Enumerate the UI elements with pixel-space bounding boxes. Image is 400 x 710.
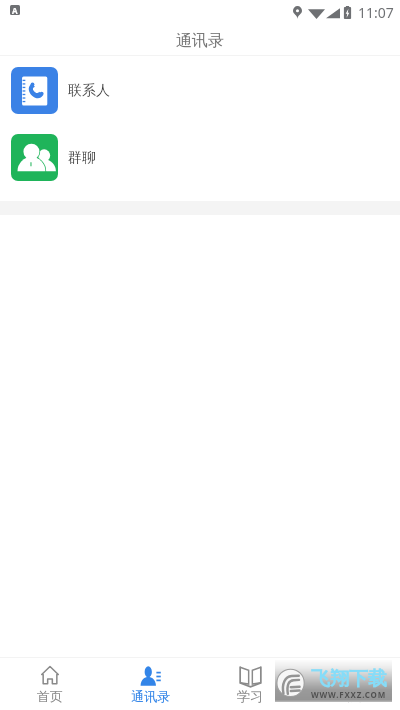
staticText: 群聊	[68, 149, 96, 167]
button[interactable]: 通讯录	[100, 658, 200, 710]
button[interactable]: 我的	[300, 658, 400, 710]
staticText: WWW.FXXZ.COM	[311, 689, 387, 700]
staticText: 联系人	[68, 82, 110, 100]
staticText: A	[12, 5, 18, 15]
button[interactable]: 联系人	[0, 57, 400, 124]
staticText: 首页	[37, 688, 63, 704]
staticText: 学习	[237, 688, 263, 704]
staticText: 飞翔下载	[311, 667, 387, 691]
staticText: 11:07	[358, 3, 394, 22]
staticText: 通讯录	[176, 31, 224, 51]
button[interactable]: 群聊	[0, 124, 400, 191]
staticText: 我的	[337, 688, 363, 704]
button[interactable]: 首页	[0, 658, 100, 710]
staticText: 通讯录	[131, 688, 170, 704]
button[interactable]: 学习	[200, 658, 300, 710]
